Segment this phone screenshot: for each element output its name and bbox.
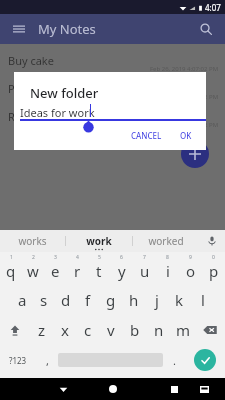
button[interactable]: 2 xyxy=(22,252,44,285)
button[interactable]: Buy cake xyxy=(0,52,225,80)
staticText: Ideas for work xyxy=(20,105,95,120)
button[interactable]: z xyxy=(30,315,53,345)
staticText: f xyxy=(85,290,91,310)
button[interactable]: 8 xyxy=(156,252,179,285)
staticText: a xyxy=(18,290,27,310)
button[interactable]: c xyxy=(76,315,99,345)
staticText: x xyxy=(61,320,69,340)
button[interactable]: x xyxy=(53,315,76,345)
button[interactable]: Open navigation menu xyxy=(9,19,29,39)
staticText: Pay bills xyxy=(8,81,50,96)
staticText: 8 xyxy=(166,254,169,261)
staticText: y xyxy=(118,261,126,281)
button[interactable]: Shift xyxy=(0,315,30,345)
staticText: o xyxy=(186,261,196,281)
staticText: i xyxy=(166,261,170,281)
staticText: p xyxy=(209,261,219,281)
staticText: ?123 xyxy=(9,355,27,366)
staticText: j xyxy=(155,290,159,310)
staticText: r xyxy=(74,261,81,281)
staticText: s xyxy=(40,290,48,310)
button[interactable]: 7 xyxy=(133,252,156,285)
staticText: z xyxy=(38,320,46,340)
staticText: Feb 26, 2019 4:07:02 PM xyxy=(150,65,219,73)
button[interactable]: l xyxy=(191,285,214,315)
button[interactable]: 3 xyxy=(44,252,66,285)
staticText: h xyxy=(129,290,139,310)
button[interactable]: d xyxy=(55,285,77,315)
staticText: d xyxy=(61,290,71,310)
button[interactable]: 6 xyxy=(110,252,133,285)
button[interactable]: 0 xyxy=(202,252,225,285)
staticText: u xyxy=(140,261,150,281)
staticText: OK xyxy=(180,130,192,141)
button[interactable]: Switch keyboard xyxy=(195,380,213,398)
button[interactable]: n xyxy=(147,315,171,345)
button[interactable]: h xyxy=(122,285,145,315)
button[interactable]: . xyxy=(163,345,185,375)
staticText: n xyxy=(154,320,164,340)
staticText: , xyxy=(46,353,49,368)
button[interactable]: CANCEL xyxy=(125,127,168,144)
button[interactable]: 9 xyxy=(179,252,202,285)
staticText: 0 xyxy=(212,254,215,261)
button[interactable]: f xyxy=(77,285,99,315)
staticText: 2 xyxy=(32,254,35,261)
button[interactable]: 5 xyxy=(88,252,110,285)
staticText: Read book xyxy=(8,109,63,124)
button[interactable]: 4 xyxy=(66,252,88,285)
staticText: b xyxy=(130,320,140,340)
button[interactable]: Backspace xyxy=(195,315,225,345)
button[interactable]: v xyxy=(99,315,123,345)
button[interactable]: work xyxy=(66,230,132,252)
staticText: 7 xyxy=(143,254,146,261)
button[interactable]: Hide keyboard xyxy=(54,380,72,398)
staticText: My Notes xyxy=(38,20,96,38)
staticText: 3 xyxy=(54,254,57,261)
button[interactable]: worked xyxy=(133,230,199,252)
button[interactable]: Enter xyxy=(194,349,216,371)
button[interactable]: Add note xyxy=(181,140,209,168)
button[interactable]: a xyxy=(11,285,33,315)
staticText: New folder xyxy=(30,84,99,102)
button[interactable]: k xyxy=(168,285,191,315)
button[interactable]: m xyxy=(171,315,195,345)
staticText: k xyxy=(175,290,184,310)
button[interactable]: Voice input xyxy=(199,230,225,252)
staticText: works xyxy=(18,234,47,248)
button[interactable]: , xyxy=(36,345,58,375)
staticText: worked xyxy=(148,234,184,248)
button[interactable]: ?123 xyxy=(0,345,36,375)
button[interactable]: Read book xyxy=(0,108,225,136)
staticText: 4:07 xyxy=(205,2,221,13)
button[interactable]: Home xyxy=(104,380,122,398)
staticText: e xyxy=(51,261,60,281)
button[interactable]: Search xyxy=(195,18,217,40)
staticText: work xyxy=(86,234,112,248)
staticText: t xyxy=(96,261,102,281)
staticText: Feb 26, 2019 4:07:02 PM xyxy=(150,93,219,101)
staticText: g xyxy=(106,290,116,310)
staticText: CANCEL xyxy=(131,130,162,141)
staticText: q xyxy=(6,261,16,281)
staticText: . xyxy=(173,353,176,368)
staticText: w xyxy=(27,261,39,281)
staticText: Buy cake xyxy=(8,53,54,68)
staticText: Feb 26, 2019 4:07:02 PM xyxy=(150,121,219,129)
button[interactable]: works xyxy=(0,230,65,252)
button[interactable]: g xyxy=(99,285,122,315)
staticText: v xyxy=(107,320,115,340)
staticText: 6 xyxy=(120,254,123,261)
button[interactable]: b xyxy=(123,315,147,345)
button[interactable]: Recent apps xyxy=(165,380,183,398)
staticText: m xyxy=(176,320,191,340)
button[interactable]: 1 xyxy=(0,252,22,285)
staticText: c xyxy=(84,320,92,340)
button[interactable]: Pay bills xyxy=(0,80,225,108)
button[interactable]: OK xyxy=(174,127,198,144)
staticText: 4 xyxy=(76,254,79,261)
staticText: 9 xyxy=(189,254,192,261)
button[interactable]: j xyxy=(145,285,168,315)
button[interactable]: s xyxy=(33,285,55,315)
